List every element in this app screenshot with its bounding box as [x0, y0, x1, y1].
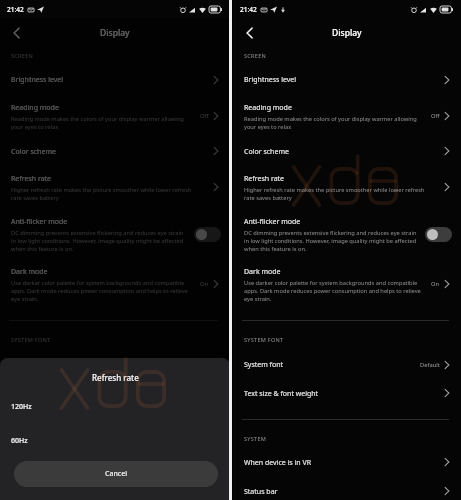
staticText: Color scheme — [11, 147, 56, 157]
staticText: SCREEN — [11, 52, 34, 60]
staticText: Off — [431, 112, 440, 120]
staticText: Brightness level — [244, 75, 297, 85]
staticText: Reading mode makes the colors of your di… — [244, 115, 417, 123]
staticText: When device is in VR — [244, 458, 312, 468]
staticText: 21:42 — [240, 5, 257, 14]
staticText: Text size & font weight — [11, 389, 86, 399]
staticText: SYSTEM — [11, 435, 34, 443]
staticText: Refresh rate — [92, 372, 139, 383]
staticText: when this feature is on. — [244, 245, 307, 253]
staticText: your eyes to relax — [244, 123, 292, 131]
staticText: Off — [200, 112, 209, 120]
button[interactable]: Dark mode — [0, 257, 230, 305]
staticText: System font — [244, 360, 284, 370]
button[interactable]: When device is in VR — [0, 448, 230, 476]
staticText: SYSTEM — [244, 435, 267, 443]
staticText: Color scheme — [244, 147, 289, 157]
button[interactable]: Back — [239, 23, 259, 43]
staticText: Refresh rate — [244, 174, 285, 184]
staticText: Dark mode — [244, 267, 281, 277]
staticText: 21:42 — [7, 5, 24, 14]
staticText: your eyes to relax — [11, 123, 59, 131]
staticText: Brightness level — [11, 75, 64, 85]
staticText: Reading mode — [11, 103, 59, 113]
button[interactable]: Status bar — [0, 477, 230, 500]
other: Toggle anti-flicker mode — [425, 227, 452, 242]
staticText: eye strain. — [11, 295, 39, 303]
staticText: On — [200, 280, 209, 288]
staticText: Status bar — [244, 487, 278, 497]
staticText: Text size & font weight — [244, 389, 319, 399]
button[interactable]: 60Hz — [0, 428, 230, 454]
staticText: Refresh rate — [11, 174, 52, 184]
staticText: DC dimming prevents extensive flickering… — [244, 229, 417, 237]
staticText: Anti-flicker mode — [244, 217, 301, 227]
button[interactable]: Refresh rate — [233, 164, 461, 207]
button[interactable]: Color scheme — [233, 137, 461, 164]
button[interactable]: Reading mode — [233, 93, 461, 137]
staticText: rate saves battery — [244, 194, 292, 202]
button[interactable]: Refresh rate — [0, 164, 230, 207]
staticText: apps. Dark mode reduces power consumptio… — [244, 287, 421, 295]
staticText: apps. Dark mode reduces power consumptio… — [11, 287, 188, 295]
button[interactable]: Reading mode — [0, 93, 230, 137]
staticText: Use darker color palette for system back… — [244, 279, 418, 287]
button[interactable]: Brightness level — [233, 65, 461, 93]
staticText: in low light conditions. However, image … — [244, 237, 417, 245]
staticText: Dark mode — [11, 267, 48, 277]
button[interactable]: Anti-flicker mode — [0, 207, 230, 257]
staticText: eye strain. — [244, 295, 272, 303]
staticText: SYSTEM FONT — [11, 336, 51, 344]
staticText: 60Hz — [11, 436, 28, 446]
button[interactable]: Color scheme — [0, 137, 230, 164]
staticText: When device is in VR — [11, 458, 79, 468]
button[interactable]: Anti-flicker mode — [233, 207, 461, 257]
staticText: rate saves battery — [11, 194, 59, 202]
staticText: Display — [332, 27, 362, 39]
button[interactable]: System font — [0, 350, 230, 378]
staticText: Use darker color palette for system back… — [11, 279, 185, 287]
button[interactable]: Text size & font weight — [0, 379, 230, 407]
staticText: SYSTEM FONT — [244, 336, 284, 344]
button[interactable]: Back — [6, 23, 26, 43]
staticText: Higher refresh rate makes the picture sm… — [244, 186, 425, 194]
staticText: Display — [100, 27, 130, 39]
staticText: Anti-flicker mode — [11, 217, 68, 227]
staticText: when this feature is on. — [11, 245, 74, 253]
staticText: Reading mode makes the colors of your di… — [11, 115, 184, 123]
staticText: 120Hz — [11, 402, 32, 412]
staticText: Reading mode — [244, 103, 292, 113]
staticText: Default — [420, 361, 440, 369]
button[interactable]: Dark mode — [233, 257, 461, 305]
staticText: in low light conditions. However, image … — [11, 237, 184, 245]
button[interactable]: 120Hz — [0, 394, 230, 420]
staticText: Higher refresh rate makes the picture sm… — [11, 186, 192, 194]
button[interactable]: When device is in VR — [233, 448, 461, 476]
button[interactable]: Text size & font weight — [233, 379, 461, 407]
button[interactable]: Brightness level — [0, 65, 230, 93]
staticText: On — [431, 280, 440, 288]
button[interactable]: Status bar — [233, 477, 461, 500]
staticText: DC dimming prevents extensive flickering… — [11, 229, 184, 237]
other: Toggle anti-flicker mode — [194, 227, 221, 242]
staticText: Cancel — [105, 469, 128, 479]
button[interactable]: Cancel — [14, 461, 218, 487]
button[interactable]: System font — [233, 350, 461, 378]
staticText: SCREEN — [244, 52, 267, 60]
